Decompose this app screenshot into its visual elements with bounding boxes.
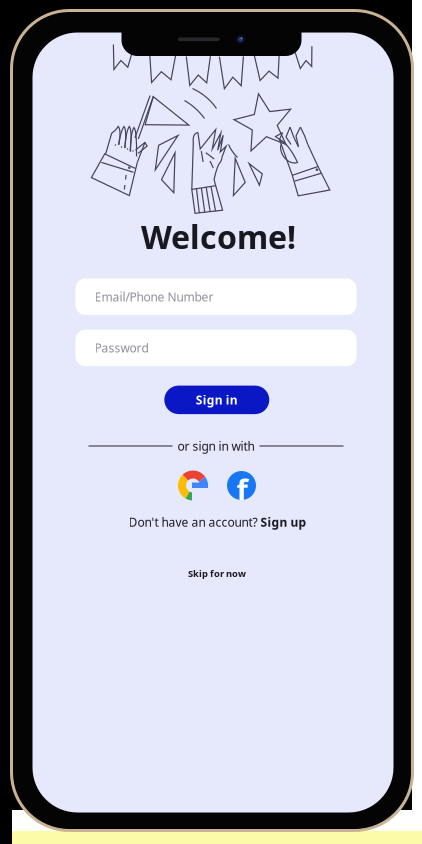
staticText: Sign up — [260, 514, 306, 530]
staticText: f — [236, 469, 247, 508]
staticText: Skip for now — [188, 567, 246, 580]
staticText: Welcome! — [141, 215, 296, 258]
staticText: Password — [94, 340, 148, 356]
button[interactable]: Sign in with Facebook — [227, 471, 256, 500]
staticText: Email/Phone Number — [94, 289, 213, 305]
staticText: Don't have an account? — [128, 514, 260, 530]
button[interactable]: Don't have an account? — [37, 513, 398, 531]
staticText: Sign in — [196, 392, 238, 408]
button[interactable]: Skip for now — [36, 565, 397, 581]
staticText: or sign in with — [177, 438, 254, 454]
button[interactable]: Sign in with Google — [178, 470, 208, 500]
button[interactable]: Sign in — [164, 386, 269, 414]
